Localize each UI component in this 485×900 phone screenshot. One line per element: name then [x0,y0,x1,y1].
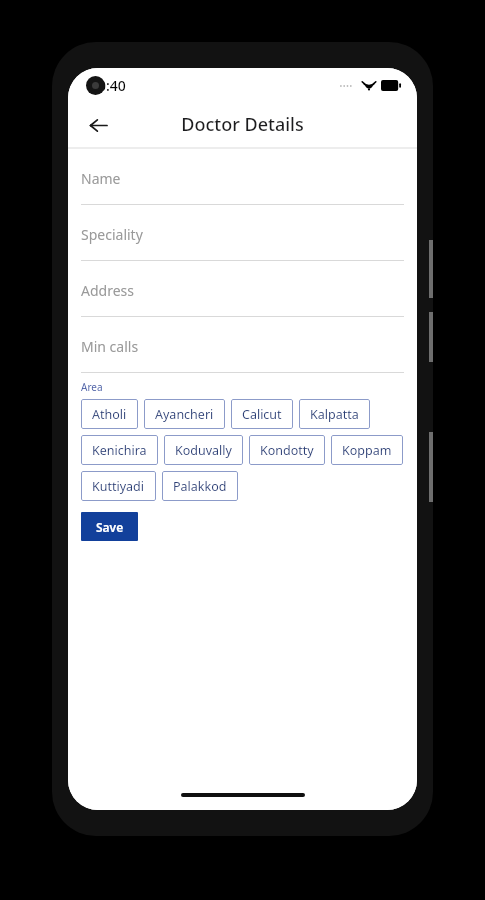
staticText: Name [81,169,121,188]
button[interactable]: Calicut [231,399,293,429]
staticText: Speciality [81,225,143,244]
button[interactable]: Atholi [81,399,138,429]
staticText: Doctor Details [181,112,304,137]
staticText: Save [96,519,124,535]
button[interactable]: Min calls [81,317,404,373]
button[interactable]: Speciality [81,205,404,261]
staticText: Kondotty [260,442,314,459]
staticText: Atholi [92,406,127,423]
button[interactable]: Back [78,105,118,145]
button[interactable]: Kalpatta [299,399,370,429]
button[interactable]: Palakkod [162,471,238,501]
button[interactable]: Kondotty [249,435,325,465]
staticText: Koduvally [175,442,232,459]
staticText: 0:40 [98,76,126,95]
staticText: Ayancheri [155,406,214,423]
staticText: Kuttiyadi [92,478,145,495]
button[interactable]: Save [81,512,138,541]
button[interactable]: Ayancheri [144,399,225,429]
staticText: Address [81,281,134,300]
button[interactable]: Address [81,261,404,317]
button[interactable]: Name [81,149,404,205]
button[interactable]: Kenichira [81,435,158,465]
staticText: Kalpatta [310,406,359,423]
staticText: Calicut [242,406,282,423]
staticText: Kenichira [92,442,147,459]
button[interactable]: Koduvally [164,435,243,465]
staticText: Area [81,380,103,394]
staticText: Min calls [81,337,139,356]
button[interactable]: Kuttiyadi [81,471,156,501]
button[interactable]: Koppam [331,435,403,465]
staticText: Koppam [342,442,392,459]
staticText: Palakkod [173,478,227,495]
